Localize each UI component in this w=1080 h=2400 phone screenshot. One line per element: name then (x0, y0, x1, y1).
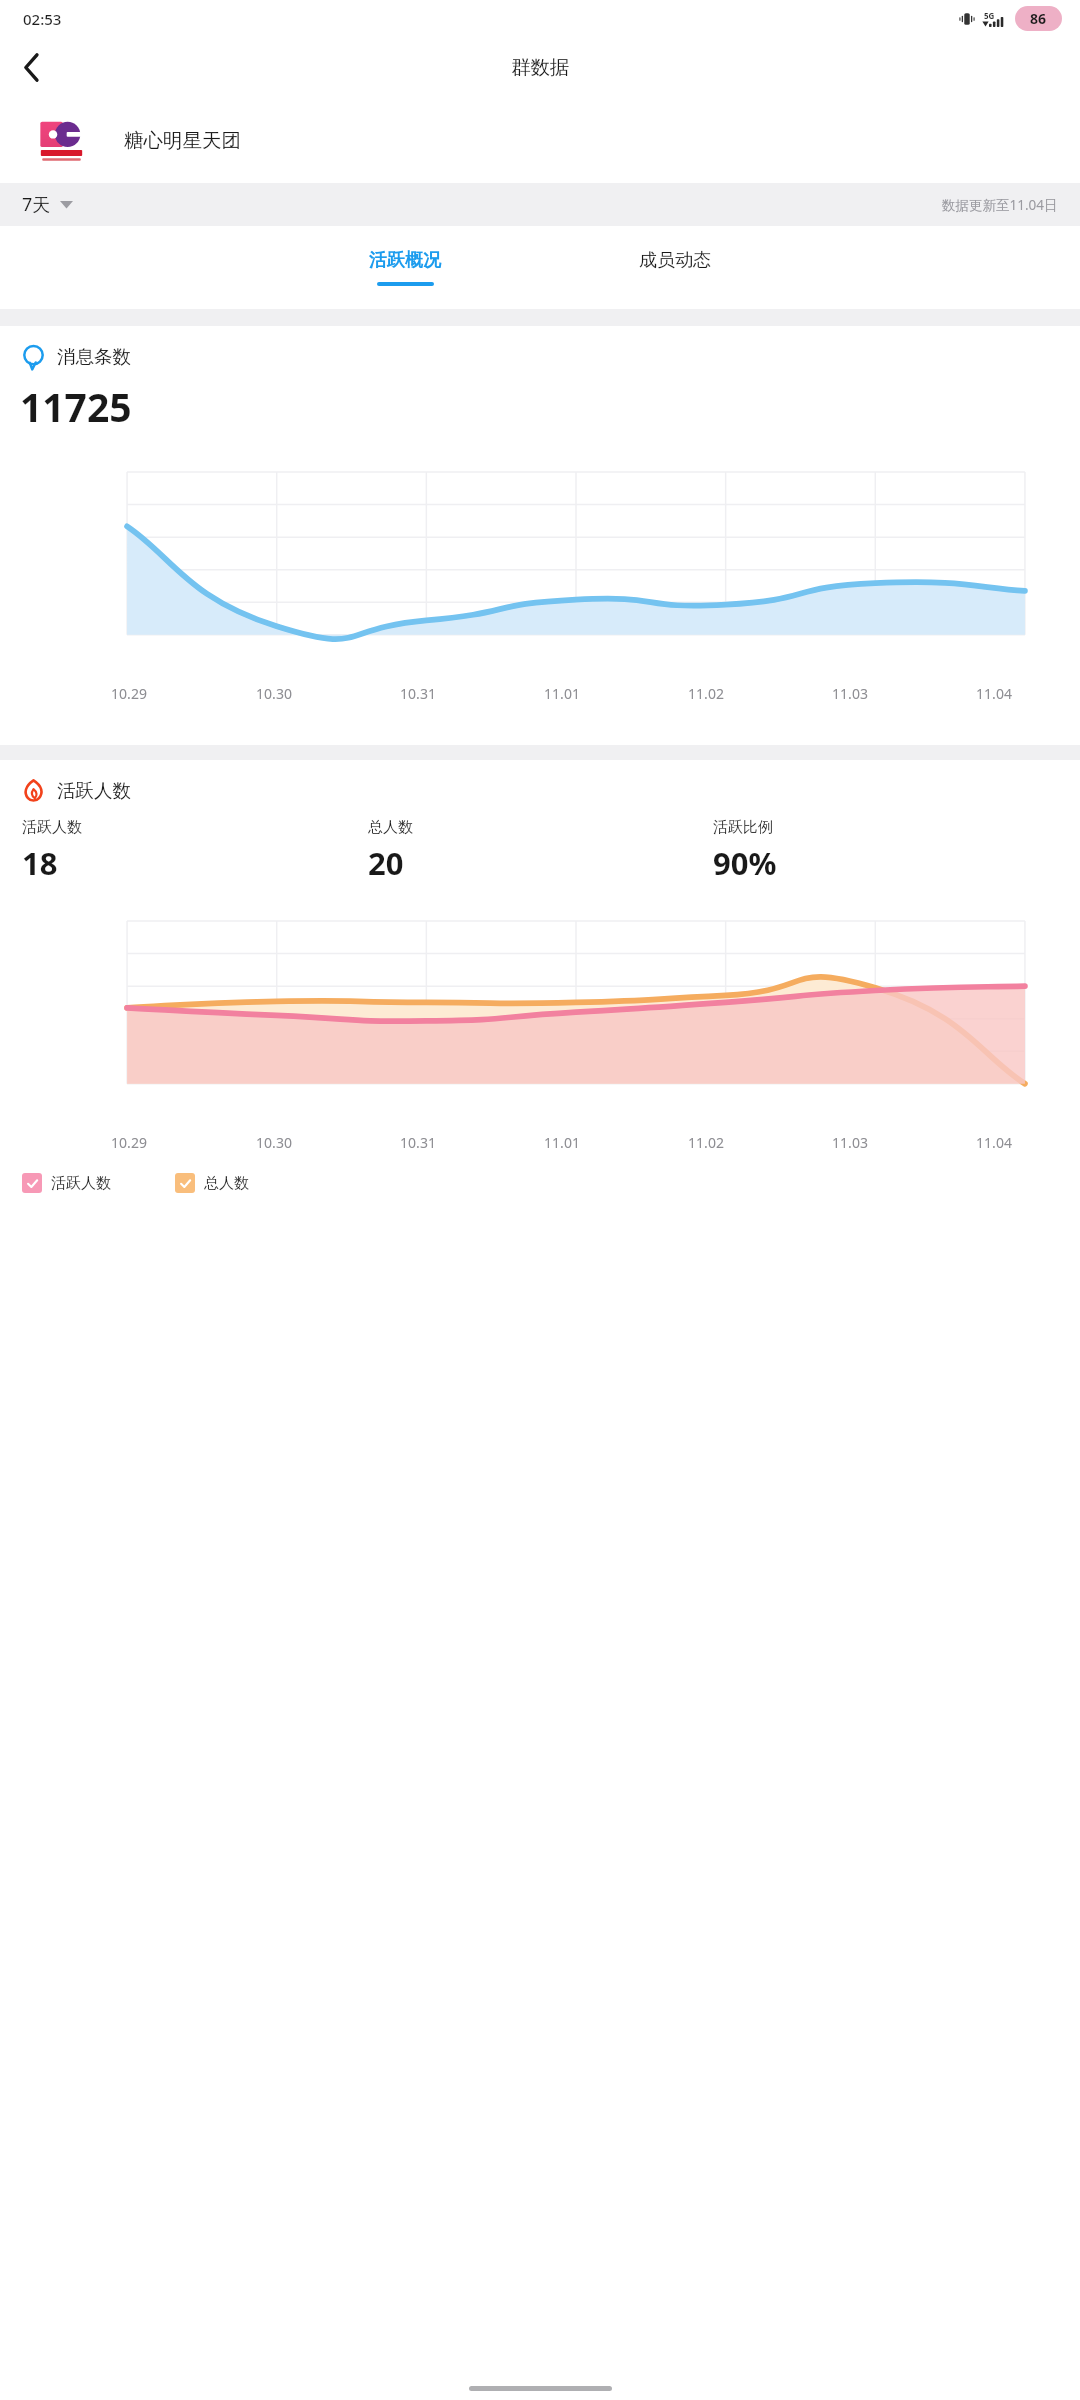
staticText: 86 (1030, 9, 1047, 28)
staticText: 11.04 (976, 1133, 1012, 1152)
staticText: 成员动态 (639, 249, 711, 272)
staticText: 群数据 (511, 55, 570, 80)
staticText: 糖心明星天团 (124, 128, 241, 153)
button[interactable]: 7天 (0, 186, 85, 223)
staticText: 10.30 (256, 684, 292, 703)
staticText: 10.30 (256, 1133, 292, 1152)
staticText: 11.03 (832, 1133, 868, 1152)
staticText: 7天 (22, 192, 51, 217)
staticText: 11.01 (544, 1133, 580, 1152)
staticText: 02:53 (23, 9, 62, 29)
button[interactable]: 总人数 (175, 1173, 249, 1193)
staticText: 活跃人数 (51, 1174, 111, 1193)
staticText: 活跃比例 (713, 818, 773, 837)
staticText: 11.02 (688, 684, 724, 703)
staticText: 5G (984, 10, 995, 21)
button[interactable]: 成员动态 (540, 226, 810, 309)
staticText: 11.03 (832, 684, 868, 703)
button[interactable]: 活跃人数 (22, 1173, 111, 1193)
staticText: 18 (22, 842, 58, 884)
button[interactable]: Back (7, 43, 56, 92)
staticText: 11725 (20, 380, 132, 433)
staticText: 20 (368, 842, 404, 884)
button[interactable]: 糖心明星天团 (0, 98, 1080, 183)
staticText: 总人数 (204, 1174, 249, 1193)
staticText: 11.04 (976, 684, 1012, 703)
staticText: 11.01 (544, 684, 580, 703)
staticText: 10.29 (111, 684, 147, 703)
staticText: 活跃人数 (57, 779, 131, 802)
staticText: 消息条数 (57, 345, 131, 368)
staticText: 11.02 (688, 1133, 724, 1152)
button[interactable]: 活跃概况 (270, 226, 540, 309)
staticText: 活跃人数 (22, 818, 82, 837)
staticText: 90% (713, 842, 777, 884)
staticText: 数据更新至11.04日 (942, 196, 1058, 214)
staticText: 10.31 (400, 1133, 436, 1152)
staticText: 总人数 (368, 818, 413, 837)
staticText: 活跃概况 (369, 249, 441, 272)
staticText: 10.31 (400, 684, 436, 703)
staticText: 10.29 (111, 1133, 147, 1152)
